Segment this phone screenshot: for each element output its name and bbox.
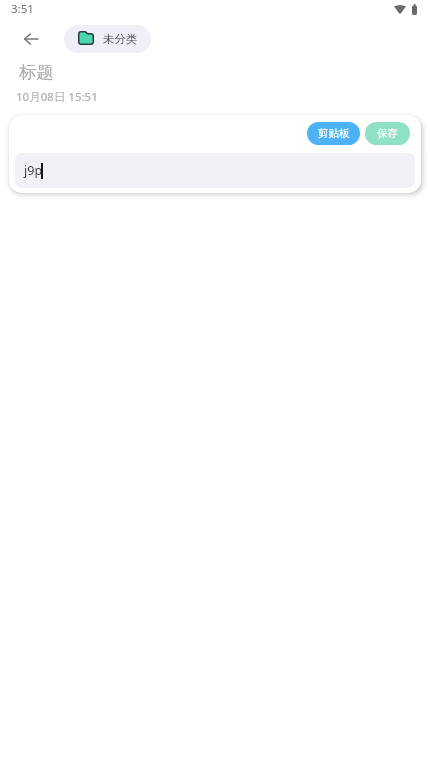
button[interactable]: Back [16,24,46,54]
staticText: 标题 [19,61,54,83]
staticText: 10月08日 15:51 [16,89,98,105]
button[interactable]: 未分类 [64,25,151,53]
button[interactable]: 剪贴板 [307,122,360,145]
staticText: 剪贴板 [318,127,350,140]
staticText: j9p [24,162,43,179]
staticText: 保存 [377,127,398,140]
staticText: 3:51 [11,1,34,17]
staticText: 未分类 [103,32,138,46]
button[interactable]: j9p [15,153,415,188]
button[interactable]: 保存 [365,122,410,145]
